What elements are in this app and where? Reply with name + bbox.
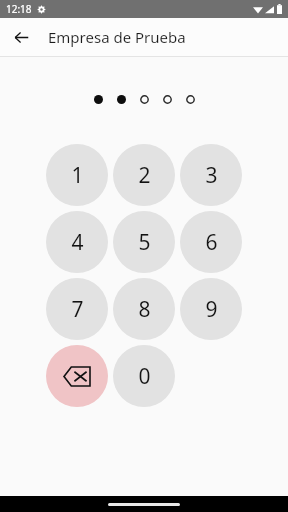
staticText: 2 [138,161,151,190]
staticText: 4 [71,228,84,257]
staticText: 5 [138,228,151,257]
button[interactable]: Delete [46,345,108,407]
button[interactable]: 8 [113,278,175,340]
button[interactable]: 4 [46,211,108,273]
staticText: 12:18 [6,2,32,16]
button[interactable]: 3 [180,144,242,206]
staticText: 9 [205,295,218,324]
button[interactable]: 9 [180,278,242,340]
staticText: 8 [138,295,151,324]
staticText: Empresa de Prueba [48,27,186,47]
staticText: 6 [205,228,218,257]
staticText: 7 [71,295,84,324]
button[interactable]: 5 [113,211,175,273]
button[interactable]: 7 [46,278,108,340]
staticText: 0 [138,362,151,391]
button[interactable]: 2 [113,144,175,206]
staticText: 1 [71,161,84,190]
button[interactable]: 0 [113,345,175,407]
button[interactable]: Back [8,24,34,50]
staticText: 3 [205,161,218,190]
button[interactable]: 1 [46,144,108,206]
button[interactable]: 6 [180,211,242,273]
